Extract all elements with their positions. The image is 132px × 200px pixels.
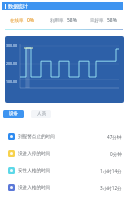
staticText: 0分钟 xyxy=(110,151,122,157)
staticText: 利用率 xyxy=(50,18,64,24)
button[interactable]: 设备 xyxy=(3,110,24,118)
button[interactable]: 人员 xyxy=(31,110,51,118)
staticText: 在线率 xyxy=(10,18,24,24)
staticText: 安性人格的时间 xyxy=(18,168,51,174)
staticText: 300.00 xyxy=(6,43,17,48)
staticText: 58% xyxy=(107,17,117,24)
staticText: 没进入格的时间 xyxy=(18,185,51,191)
button[interactable]: 数据统计 xyxy=(2,2,123,10)
staticText: 设备 xyxy=(9,111,18,117)
staticText: 数据统计 xyxy=(8,3,28,9)
staticText: 200.00 xyxy=(6,61,17,66)
staticText: 100.00 xyxy=(6,79,17,84)
staticText: 58% xyxy=(67,17,77,24)
staticText: 完好率 xyxy=(90,18,104,24)
staticText: 47分钟 xyxy=(107,134,122,140)
staticText: 没进入停的时间 xyxy=(18,151,51,157)
staticText: 到报警点止的时间 xyxy=(18,134,55,140)
staticText: 0% xyxy=(27,17,35,24)
button[interactable]: 安性人格的时间 xyxy=(0,162,132,179)
staticText: 1小时14分 xyxy=(100,168,122,174)
button[interactable]: 没进入停的时间 xyxy=(0,145,132,162)
staticText: 人员 xyxy=(37,111,46,117)
staticText: 3小时12分 xyxy=(100,185,122,191)
button[interactable]: 没进入格的时间 xyxy=(0,179,132,196)
button[interactable]: 到报警点止的时间 xyxy=(0,128,132,145)
